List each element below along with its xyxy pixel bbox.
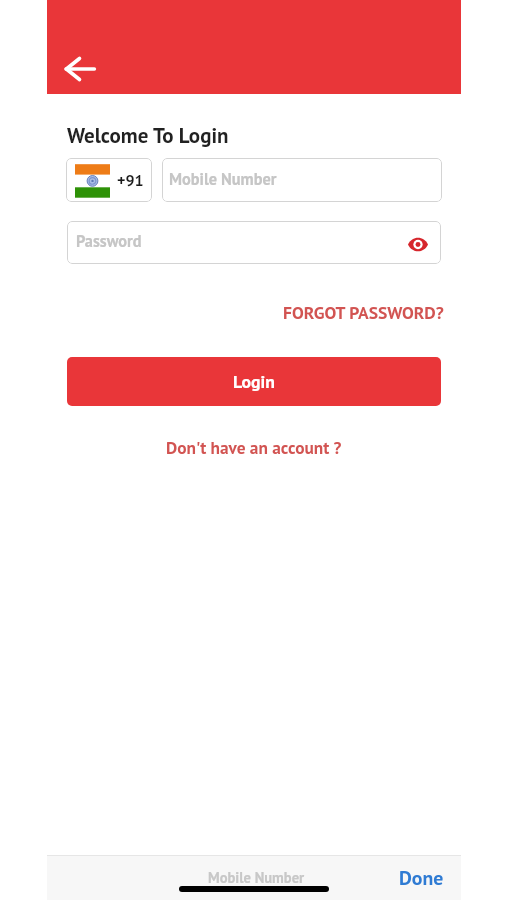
staticText: Mobile Number	[169, 168, 277, 189]
staticText: Mobile Number	[208, 868, 305, 887]
staticText: Done	[399, 865, 444, 891]
staticText: FORGOT PASSWORD?	[283, 301, 444, 324]
staticText: Welcome To Login	[67, 122, 229, 149]
button[interactable]: Done	[399, 865, 444, 891]
button[interactable]: FORGOT PASSWORD?	[250, 299, 444, 325]
staticText: Login	[233, 370, 275, 393]
button[interactable]: Back	[56, 45, 104, 93]
button[interactable]: Login	[67, 357, 441, 406]
staticText: +91	[117, 170, 144, 191]
button[interactable]: Show password	[403, 229, 433, 259]
button[interactable]: +91	[66, 158, 152, 202]
button[interactable]: Don't have an account ?	[67, 434, 441, 460]
staticText: Password	[76, 230, 142, 251]
button[interactable]: Mobile Number	[162, 158, 442, 202]
button[interactable]: Password	[67, 221, 441, 264]
staticText: Don't have an account ?	[166, 436, 342, 458]
